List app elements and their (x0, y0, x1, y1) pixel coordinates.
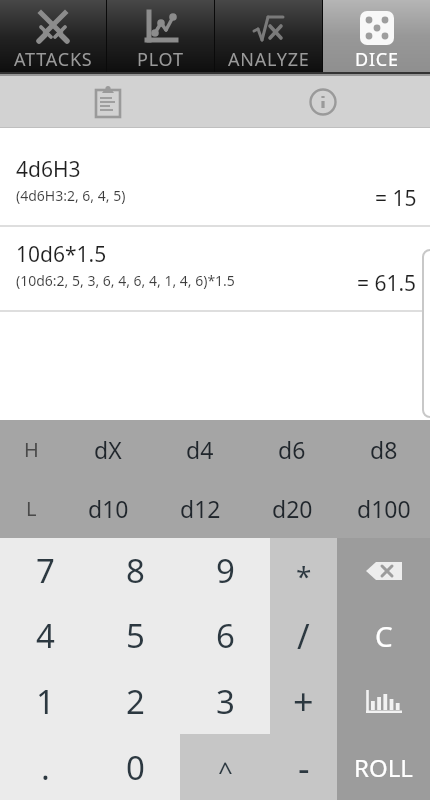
button[interactable]: 8 (90, 538, 180, 603)
button[interactable]: dX (62, 420, 154, 479)
staticText: 3 (216, 679, 235, 724)
staticText: 10d6*1.5 (16, 240, 107, 269)
staticText: dX (94, 434, 122, 465)
staticText: ANALYZE (228, 47, 310, 72)
button[interactable]: 6 (180, 603, 270, 668)
button[interactable]: ATTACKS (0, 0, 106, 72)
button[interactable]: d4 (154, 420, 246, 479)
button[interactable]: d12 (154, 479, 246, 538)
staticText: * (296, 557, 312, 595)
staticText: ^ (218, 753, 233, 788)
staticText: = 15 (375, 184, 417, 213)
button[interactable]: d20 (246, 479, 338, 538)
button[interactable]: d8 (338, 420, 430, 479)
button[interactable] (215, 76, 430, 127)
button[interactable]: 7 (0, 538, 90, 603)
button[interactable]: ^ (180, 734, 270, 800)
button[interactable]: + (270, 668, 337, 734)
staticText: d10 (88, 493, 129, 524)
staticText: 4 (36, 613, 55, 658)
staticText: 6 (216, 613, 235, 658)
staticText: DICE (355, 47, 399, 72)
button[interactable]: 4 (0, 603, 90, 668)
button[interactable] (337, 538, 430, 603)
button[interactable]: . (0, 734, 90, 800)
staticText: 1 (36, 679, 55, 724)
staticText: 8 (126, 548, 145, 593)
staticText: + (293, 677, 314, 726)
staticText: 7 (36, 548, 55, 593)
staticText: ROLL (354, 751, 413, 784)
button[interactable]: 4d6H3 (0, 142, 430, 225)
button[interactable]: d10 (62, 479, 154, 538)
staticText: 0 (126, 745, 145, 790)
button[interactable]: d100 (338, 479, 430, 538)
staticText: PLOT (137, 47, 184, 72)
button[interactable]: 5 (90, 603, 180, 668)
staticText: C (375, 617, 393, 655)
button[interactable] (337, 668, 430, 734)
button[interactable]: C (337, 603, 430, 668)
staticText: d4 (186, 434, 214, 465)
staticText: ATTACKS (14, 47, 93, 72)
button[interactable]: 10d6*1.5 (0, 227, 430, 310)
button[interactable]: L (0, 479, 62, 538)
button[interactable]: 0 (90, 734, 180, 800)
staticText: d12 (180, 493, 221, 524)
button[interactable]: H (0, 420, 62, 479)
button[interactable] (0, 76, 215, 127)
button[interactable]: * (270, 538, 337, 603)
button[interactable]: d6 (246, 420, 338, 479)
staticText: 5 (126, 613, 145, 658)
button[interactable]: 9 (180, 538, 270, 603)
button[interactable]: 1 (0, 668, 90, 734)
staticText: (4d6H3:2, 6, 4, 5) (16, 186, 126, 205)
staticText: L (26, 495, 37, 522)
staticText: d8 (370, 434, 398, 465)
staticText: 2 (126, 679, 145, 724)
button[interactable]: PLOT (107, 0, 214, 72)
staticText: = 61.5 (357, 269, 417, 298)
staticText: . (41, 745, 50, 790)
staticText: 9 (216, 548, 235, 593)
button[interactable]: 2 (90, 668, 180, 734)
button[interactable]: / (270, 603, 337, 668)
button[interactable]: DICE (323, 0, 430, 72)
button[interactable]: ROLL (337, 734, 430, 800)
staticText: (10d6:2, 5, 3, 6, 4, 6, 4, 1, 4, 6)*1.5 (16, 271, 235, 290)
staticText: H (24, 436, 39, 463)
staticText: d6 (278, 434, 306, 465)
staticText: d20 (272, 493, 313, 524)
staticText: 4d6H3 (16, 155, 81, 184)
button[interactable]: ANALYZE (215, 0, 322, 72)
button[interactable]: 3 (180, 668, 270, 734)
staticText: d100 (357, 493, 411, 524)
staticText: - (298, 743, 310, 792)
button[interactable]: - (270, 734, 337, 800)
staticText: / (297, 613, 310, 659)
